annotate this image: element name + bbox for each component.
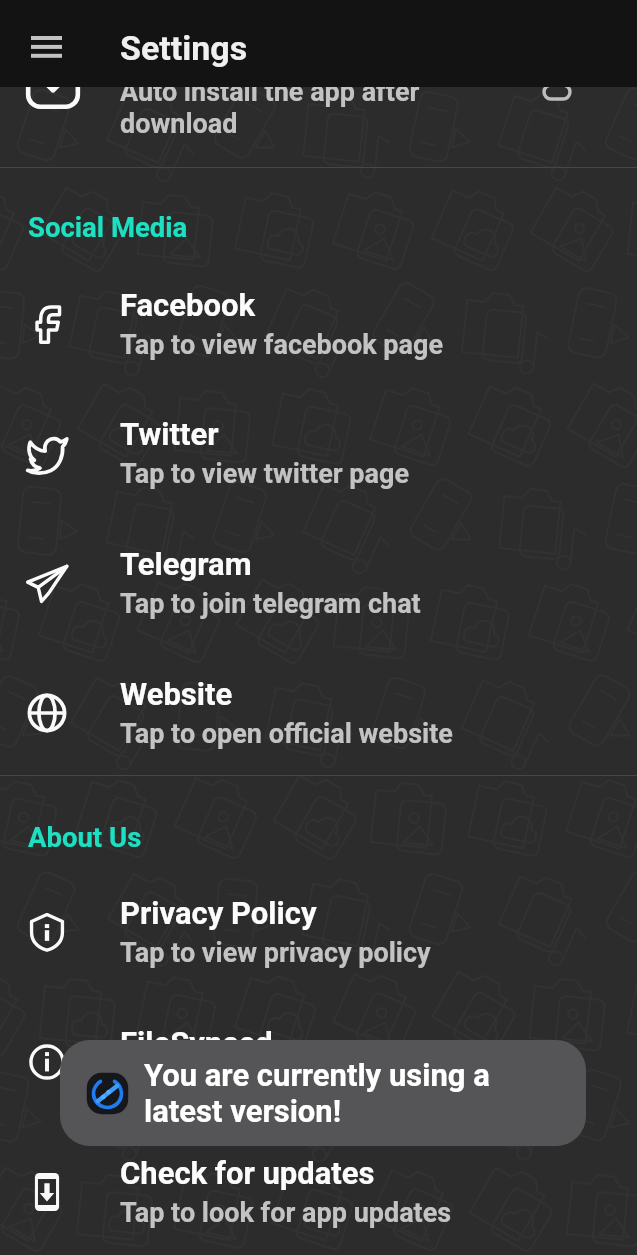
button[interactable]: Auto install the app after download: [0, 43, 637, 173]
button[interactable]: Privacy Policy: [0, 867, 637, 997]
staticText: Website: [120, 676, 233, 712]
staticText: About Us: [28, 821, 142, 853]
staticText: Twitter: [120, 416, 219, 452]
staticText: Tap to view privacy policy: [120, 937, 431, 969]
staticText: Tap to view facebook page: [120, 329, 443, 361]
staticText: Facebook: [120, 287, 255, 323]
button[interactable]: Twitter: [0, 388, 637, 518]
button[interactable]: Website: [0, 648, 637, 778]
button[interactable]: Telegram: [0, 518, 637, 648]
staticText: Check for updates: [120, 1155, 375, 1191]
staticText: Tap to look for app updates: [120, 1197, 452, 1229]
staticText: Settings: [120, 28, 248, 68]
staticText: Tap to join telegram chat: [120, 588, 421, 620]
button[interactable]: Check for updates: [0, 1127, 637, 1255]
staticText: Privacy Policy: [120, 895, 317, 931]
button[interactable]: FileSynced: [0, 997, 637, 1127]
staticText: You are currently using a latest version…: [144, 1057, 524, 1130]
staticText: FileSynced: [120, 1025, 273, 1061]
button[interactable]: Open navigation menu: [0, 0, 93, 87]
staticText: Auto install the app after download: [120, 76, 442, 140]
staticText: Tap to view twitter page: [120, 458, 409, 490]
staticText: Version 3.3: [120, 1067, 259, 1099]
staticText: Telegram: [120, 546, 252, 582]
staticText: Tap to open official website: [120, 718, 453, 750]
staticText: Social Media: [28, 211, 188, 243]
button[interactable]: Facebook: [0, 259, 637, 389]
